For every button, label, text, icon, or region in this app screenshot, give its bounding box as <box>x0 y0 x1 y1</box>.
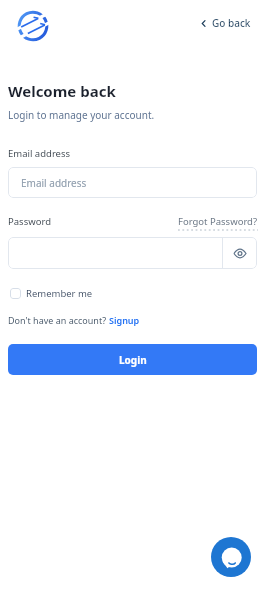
button[interactable]: Forgot Password? <box>178 215 258 228</box>
button[interactable]: Signup <box>109 314 140 326</box>
button[interactable]: Email address <box>8 167 257 198</box>
staticText: Remember me <box>26 287 93 300</box>
staticText: Password <box>8 215 51 228</box>
staticText: Email address <box>21 176 87 190</box>
button[interactable] <box>223 237 257 269</box>
button[interactable] <box>211 537 251 577</box>
staticText: Don't have an account? <box>8 314 109 326</box>
button[interactable] <box>8 237 222 269</box>
staticText: Login <box>119 353 147 367</box>
staticText: Email address <box>8 147 71 160</box>
button[interactable]: Login <box>8 344 257 375</box>
staticText: Go back <box>212 16 251 30</box>
button[interactable]: Go back <box>201 16 251 30</box>
staticText: Welcome back <box>8 81 116 101</box>
button[interactable]: Remember me <box>10 287 93 300</box>
staticText: Login to manage your account. <box>8 108 155 122</box>
